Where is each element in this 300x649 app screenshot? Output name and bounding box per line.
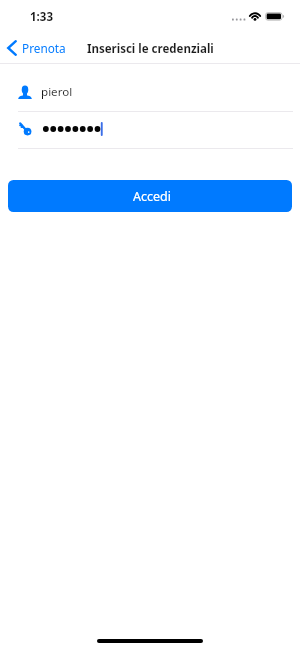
staticText: Prenota — [22, 40, 66, 56]
button[interactable] — [0, 112, 300, 148]
staticText: Inserisci le credenziali — [87, 41, 214, 57]
button[interactable]: Back to Prenota — [7, 38, 66, 58]
button[interactable]: Accedi — [8, 180, 292, 212]
staticText: 1:33 — [30, 9, 53, 25]
staticText: pierol — [41, 84, 73, 100]
staticText: Accedi — [133, 188, 171, 205]
button[interactable]: pierol — [0, 64, 300, 111]
